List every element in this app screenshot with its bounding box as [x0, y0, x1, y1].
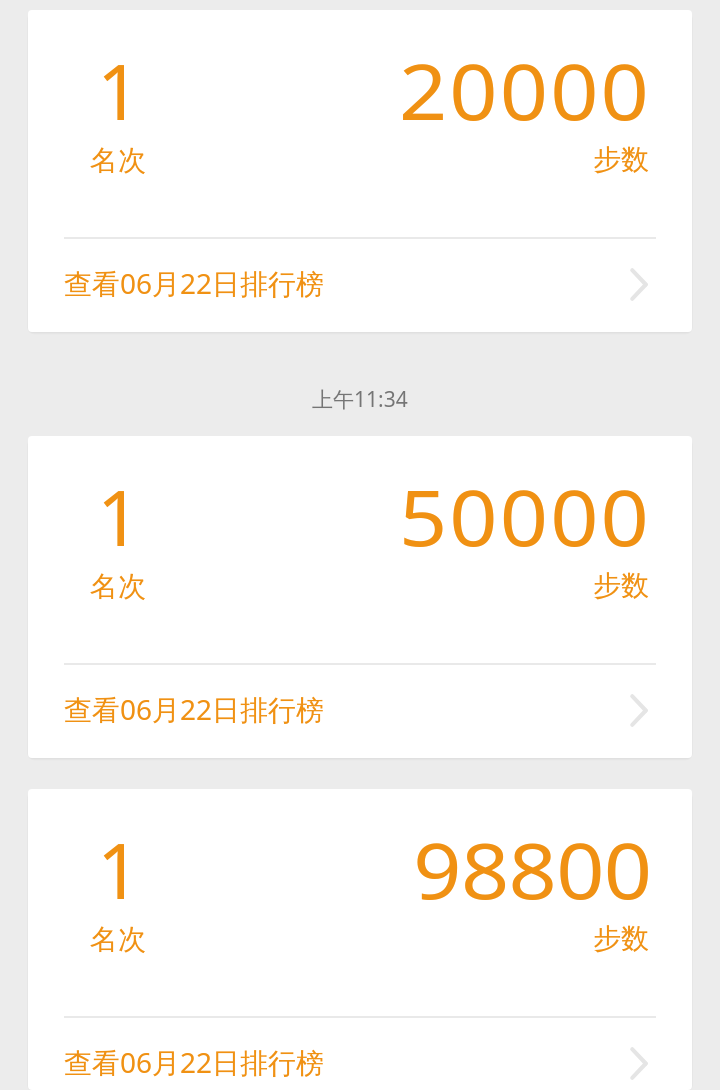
button[interactable]: 1: [28, 10, 692, 332]
staticText: 名次: [90, 143, 146, 178]
staticText: 步数: [593, 568, 649, 603]
staticText: 98800: [413, 818, 652, 922]
staticText: 查看06月22日排行榜: [64, 1043, 325, 1081]
staticText: 步数: [593, 142, 649, 177]
staticText: 1: [97, 39, 142, 143]
staticText: 50000: [399, 465, 652, 569]
staticText: 查看06月22日排行榜: [64, 690, 325, 728]
other: 查看排行榜: [630, 694, 648, 727]
other: 查看排行榜: [630, 268, 648, 301]
staticText: 上午11:34: [312, 385, 408, 414]
staticText: 20000: [399, 39, 652, 143]
staticText: 1: [97, 465, 142, 569]
staticText: 名次: [90, 569, 146, 604]
other: 查看排行榜: [630, 1047, 648, 1080]
button[interactable]: 1: [28, 436, 692, 758]
button[interactable]: 查看06月22日排行榜: [28, 236, 692, 330]
button[interactable]: 查看06月22日排行榜: [28, 1015, 692, 1090]
button[interactable]: 查看06月22日排行榜: [28, 662, 692, 756]
button[interactable]: 1: [28, 789, 692, 1090]
staticText: 步数: [593, 921, 649, 956]
staticText: 名次: [90, 922, 146, 957]
staticText: 查看06月22日排行榜: [64, 264, 325, 302]
staticText: 1: [97, 818, 142, 922]
